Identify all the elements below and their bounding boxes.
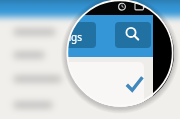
staticText: Settings [67,30,83,44]
button[interactable]: Search [115,22,151,48]
button[interactable] [67,22,96,48]
